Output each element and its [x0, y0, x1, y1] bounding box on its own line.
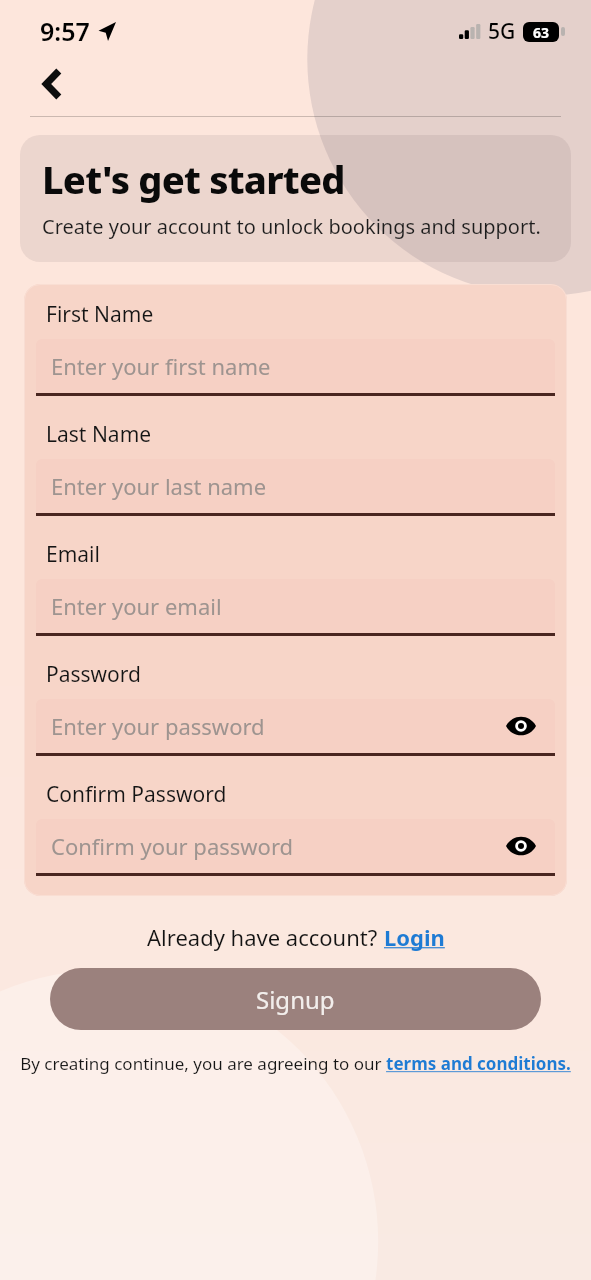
- staticText: Enter your password: [51, 711, 265, 741]
- button[interactable]: Login: [384, 922, 445, 952]
- button[interactable]: Enter your password: [36, 699, 555, 756]
- staticText: 63: [533, 23, 550, 42]
- button[interactable]: Back: [30, 62, 74, 106]
- staticText: Last Name: [46, 420, 152, 449]
- staticText: By creating continue, you are agreeing t…: [20, 1052, 571, 1075]
- button[interactable]: Signup: [50, 968, 541, 1030]
- button[interactable]: Confirm your password: [36, 819, 555, 876]
- button[interactable]: Show password: [501, 706, 541, 746]
- staticText: Enter your email: [51, 591, 222, 621]
- staticText: Already have account?: [147, 922, 384, 952]
- staticText: Email: [46, 540, 100, 569]
- button[interactable]: Enter your first name: [36, 339, 555, 396]
- staticText: Password: [46, 660, 141, 689]
- staticText: Confirm Password: [46, 780, 227, 809]
- staticText: Enter your first name: [51, 351, 271, 381]
- staticText: Create your account to unlock bookings a…: [42, 213, 541, 240]
- staticText: Let's get started: [42, 153, 345, 205]
- staticText: Login: [384, 922, 445, 952]
- button[interactable]: Enter your email: [36, 579, 555, 636]
- staticText: Signup: [256, 983, 335, 1016]
- staticText: Enter your last name: [51, 471, 267, 501]
- staticText: 5G: [488, 17, 516, 46]
- staticText: 9:57: [40, 14, 90, 48]
- button[interactable]: By creating continue, you are agreeing t…: [20, 1052, 571, 1075]
- staticText: First Name: [46, 300, 154, 329]
- staticText: Confirm your password: [51, 831, 294, 861]
- button[interactable]: Show password: [501, 826, 541, 866]
- button[interactable]: Enter your last name: [36, 459, 555, 516]
